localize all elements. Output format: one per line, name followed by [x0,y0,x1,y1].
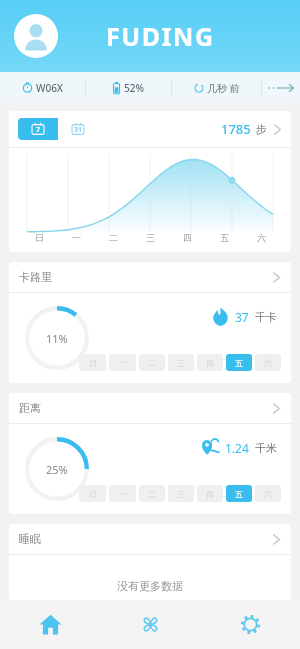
button[interactable]: 7 [18,118,98,140]
staticText: 没有更多数据 [117,579,183,593]
staticText: 四 [206,489,214,499]
staticText: 31 [74,125,83,135]
staticText: 一 [72,232,81,243]
staticText: 六 [264,489,272,499]
staticText: 步 [256,122,267,136]
button[interactable]: 四 [197,485,223,502]
button[interactable]: 日 [79,354,106,371]
staticText: 25% [46,462,68,477]
staticText: 52% [124,81,144,95]
button[interactable]: 五 [226,354,252,371]
staticText: 四 [183,232,192,243]
button[interactable]: 六 [255,354,281,371]
staticText: 11% [46,331,68,346]
staticText: 千米 [255,441,277,455]
button[interactable]: 三 [168,354,194,371]
staticText: W06X [36,81,63,95]
staticText: 1785 [221,120,251,138]
staticText: 六 [257,232,266,243]
button[interactable]: Home [0,600,100,649]
button[interactable]: More [262,72,300,103]
staticText: 五 [220,232,229,243]
staticText: 7 [36,125,41,135]
button[interactable]: Profile [14,14,58,58]
button[interactable]: 几秒 前 [172,72,261,103]
staticText: FUDING [106,19,215,53]
button[interactable]: Device [100,600,200,649]
button[interactable]: 五 [226,485,252,502]
staticText: 三 [177,489,185,499]
staticText: 五 [235,358,243,368]
staticText: 二 [109,232,118,243]
button[interactable]: 31 [58,118,98,140]
staticText: 日 [89,358,97,368]
button[interactable]: 52% [86,72,171,103]
button[interactable]: 7 [18,118,58,140]
staticText: 三 [146,232,155,243]
staticText: 一 [119,358,127,368]
staticText: 37 [235,309,249,325]
staticText: 几秒 前 [207,81,240,95]
staticText: 六 [264,358,272,368]
staticText: 睡眠 [19,532,41,546]
button[interactable]: 二 [139,485,165,502]
button[interactable]: 六 [255,485,281,502]
button[interactable]: 距离 [9,393,291,514]
staticText: 日 [35,232,44,243]
staticText: 卡路里 [19,270,52,284]
button[interactable]: 四 [197,354,223,371]
button[interactable]: 日 [79,485,106,502]
staticText: 距离 [19,401,41,415]
staticText: 千卡 [255,310,277,324]
staticText: 日 [89,489,97,499]
button[interactable]: 二 [139,354,165,371]
button[interactable]: Settings [200,600,300,649]
staticText: 1.24 [225,440,249,456]
staticText: 五 [235,489,243,499]
button[interactable]: 睡眠 [9,524,291,600]
staticText: 三 [177,358,185,368]
button[interactable]: 卡路里 [9,262,291,383]
staticText: 二 [148,358,156,368]
staticText: 一 [119,489,127,499]
button[interactable]: 三 [168,485,194,502]
staticText: 二 [148,489,156,499]
button[interactable]: W06X [0,72,85,103]
staticText: 四 [206,358,214,368]
